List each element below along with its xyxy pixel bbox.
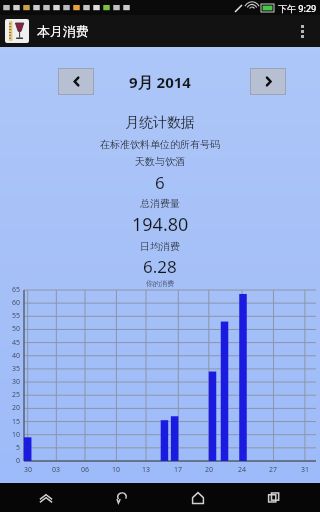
staticText: 本月消费: [37, 23, 89, 39]
staticText: 天数与饮酒: [135, 155, 185, 168]
button[interactable]: Home: [168, 483, 228, 512]
button[interactable]: Back: [92, 483, 152, 512]
staticText: 你的消费: [146, 279, 174, 288]
staticText: 03: [52, 465, 61, 475]
staticText: 06: [81, 465, 90, 475]
staticText: 17: [174, 465, 183, 475]
staticText: 20: [12, 403, 21, 413]
staticText: 30: [12, 377, 21, 387]
staticText: 35: [12, 364, 21, 374]
staticText: 月统计数据: [125, 114, 195, 132]
staticText: 日均消费: [140, 240, 180, 253]
staticText: 9月 2014: [129, 72, 191, 92]
staticText: 在标准饮料单位的所有号码: [100, 138, 220, 151]
staticText: 50: [12, 324, 21, 334]
staticText: 下午 9:29: [278, 2, 317, 14]
staticText: 40: [12, 351, 21, 361]
button[interactable]: More options: [289, 18, 315, 44]
staticText: 13: [142, 465, 151, 475]
button[interactable]: Previous month: [59, 69, 93, 94]
staticText: 24: [238, 465, 247, 475]
staticText: 6: [155, 171, 165, 194]
staticText: 25: [12, 390, 21, 400]
staticText: 总消费量: [140, 197, 180, 210]
staticText: 6.28: [143, 255, 177, 278]
staticText: 31: [301, 465, 310, 475]
button[interactable]: Next month: [251, 69, 285, 94]
staticText: 27: [269, 465, 278, 475]
staticText: 65: [12, 285, 21, 295]
staticText: 5: [16, 443, 21, 453]
staticText: 55: [12, 311, 21, 321]
staticText: 20: [205, 465, 214, 475]
staticText: 45: [12, 338, 21, 348]
staticText: 15: [12, 417, 21, 427]
staticText: 194.80: [132, 212, 189, 237]
button[interactable]: Menu: [16, 483, 76, 512]
staticText: 10: [12, 430, 21, 440]
staticText: 0: [16, 456, 21, 466]
staticText: 60: [12, 298, 21, 308]
button[interactable]: Recent apps: [244, 483, 304, 512]
staticText: 30: [24, 465, 33, 475]
staticText: 10: [112, 465, 121, 475]
